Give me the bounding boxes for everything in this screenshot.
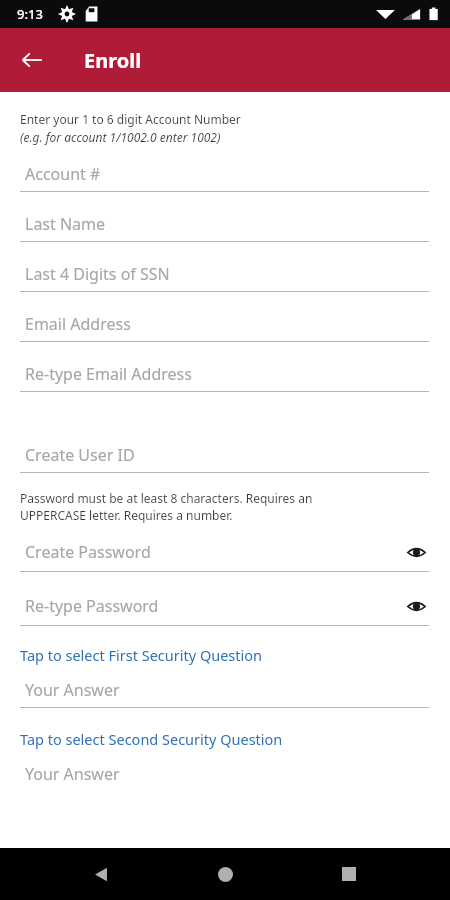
- staticText: Re-type Email Address: [25, 363, 192, 385]
- staticText: Re-type Password: [25, 595, 159, 617]
- staticText: Create User ID: [25, 444, 135, 466]
- staticText: Your Answer: [25, 679, 120, 701]
- button[interactable]: Tap to select Second Security Question: [20, 729, 429, 749]
- staticText: Last 4 Digits of SSN: [25, 263, 170, 285]
- button[interactable]: Last 4 Digits of SSN: [20, 263, 429, 292]
- staticText: (e.g. for account 1/1002.0 enter 1002): [20, 129, 221, 145]
- staticText: Last Name: [25, 213, 106, 235]
- button[interactable]: Home: [202, 851, 248, 897]
- staticText: Account #: [25, 163, 101, 185]
- staticText: UPPERCASE letter. Requires a number.: [20, 507, 233, 523]
- button[interactable]: Back: [78, 851, 124, 897]
- staticText: Enter your 1 to 6 digit Account Number: [20, 111, 241, 127]
- button[interactable]: Last Name: [20, 213, 429, 242]
- button[interactable]: Show password: [403, 539, 429, 565]
- button[interactable]: Recent apps: [326, 851, 372, 897]
- staticText: Enroll: [84, 47, 142, 74]
- button[interactable]: Your Answer: [20, 679, 429, 708]
- button[interactable]: Create Password: [20, 539, 429, 572]
- button[interactable]: Account #: [20, 163, 429, 192]
- button[interactable]: Show password: [403, 593, 429, 619]
- staticText: 9:13: [17, 5, 43, 23]
- staticText: Your Answer: [25, 763, 120, 785]
- button[interactable]: Your Answer: [20, 763, 429, 791]
- button[interactable]: Re-type Password: [20, 593, 429, 626]
- button[interactable]: Email Address: [20, 313, 429, 342]
- button[interactable]: Tap to select First Security Question: [20, 645, 429, 665]
- staticText: Tap to select Second Security Question: [20, 729, 283, 749]
- button[interactable]: Create User ID: [20, 444, 429, 473]
- button[interactable]: Re-type Email Address: [20, 363, 429, 392]
- staticText: Create Password: [25, 541, 151, 563]
- staticText: Tap to select First Security Question: [20, 645, 263, 665]
- staticText: Email Address: [25, 313, 131, 335]
- button[interactable]: Back: [10, 38, 54, 82]
- staticText: Password must be at least 8 characters. …: [20, 490, 313, 506]
